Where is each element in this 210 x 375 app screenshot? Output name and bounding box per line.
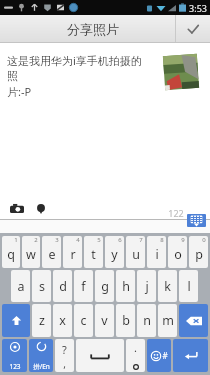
button[interactable]: Switch keyboard — [187, 214, 206, 227]
staticText: 3:53 — [189, 2, 207, 14]
staticText: e — [48, 246, 56, 263]
staticText: , — [63, 357, 66, 371]
staticText: a — [17, 278, 25, 295]
staticText: q — [7, 246, 15, 263]
staticText: 5 — [97, 236, 101, 244]
staticText: 7 — [139, 236, 143, 244]
button[interactable]: Question comma — [55, 339, 74, 372]
staticText: m — [162, 312, 174, 329]
button[interactable]: j — [137, 270, 156, 302]
staticText: 6 — [118, 236, 122, 244]
staticText: y — [111, 246, 118, 263]
button[interactable]: h — [116, 270, 135, 302]
button[interactable]: 2 — [22, 236, 40, 268]
button[interactable]: b — [116, 304, 135, 337]
staticText: 4 — [76, 236, 80, 244]
button[interactable]: a — [11, 270, 30, 302]
button[interactable]: f — [74, 270, 93, 302]
button[interactable]: Period — [126, 339, 145, 372]
button[interactable]: Language — [29, 339, 53, 372]
staticText: x — [59, 312, 66, 329]
staticText: c — [80, 312, 87, 329]
staticText: j — [145, 278, 149, 295]
staticText: t — [91, 246, 96, 263]
button[interactable]: n — [137, 304, 156, 337]
staticText: r — [70, 246, 76, 263]
staticText: z — [39, 312, 45, 329]
staticText: k — [164, 278, 171, 295]
button[interactable]: Space — [76, 339, 124, 372]
button[interactable]: Camera — [8, 200, 26, 218]
button[interactable]: 3 — [42, 236, 61, 268]
button[interactable]: 5 — [84, 236, 103, 268]
button[interactable]: x — [53, 304, 72, 337]
button[interactable]: 0 — [189, 236, 208, 268]
button[interactable]: g — [95, 270, 114, 302]
button[interactable]: Send — [176, 15, 210, 43]
button[interactable]: Numbers — [2, 339, 27, 372]
staticText: v — [101, 312, 108, 329]
button[interactable]: 7 — [126, 236, 145, 268]
button[interactable]: l — [179, 270, 198, 302]
button[interactable]: 4 — [63, 236, 82, 268]
button[interactable]: Backspace — [179, 304, 208, 337]
button[interactable]: s — [32, 270, 51, 302]
staticText: g — [101, 278, 109, 295]
staticText: 9 — [181, 236, 185, 244]
button[interactable]: c — [74, 304, 93, 337]
staticText: # — [162, 350, 168, 361]
staticText: b — [122, 312, 130, 329]
button[interactable]: Enter — [173, 339, 208, 372]
staticText: w — [26, 246, 36, 263]
staticText: 122 — [168, 207, 184, 219]
staticText: n — [143, 312, 151, 329]
staticText: 8 — [160, 236, 164, 244]
staticText: f — [81, 278, 86, 295]
staticText: u — [132, 246, 140, 263]
button[interactable]: m — [158, 304, 177, 337]
staticText: 2 — [34, 236, 38, 244]
button[interactable]: v — [95, 304, 114, 337]
button[interactable]: 1 — [2, 236, 20, 268]
staticText: 分享照片 — [67, 21, 119, 37]
staticText: 0 — [202, 236, 206, 244]
staticText: 拼/En — [33, 362, 50, 371]
staticText: 3 — [55, 236, 59, 244]
button[interactable]: Photo — [158, 49, 204, 95]
button[interactable]: Location — [32, 200, 50, 218]
staticText: . — [134, 340, 137, 355]
button[interactable]: z — [32, 304, 51, 337]
button[interactable]: 9 — [168, 236, 187, 268]
staticText: 这是我用华为i享手机拍摄的照 片:-P — [7, 53, 147, 99]
staticText: 1 — [14, 236, 18, 244]
button[interactable]: k — [158, 270, 177, 302]
button[interactable]: Shift — [2, 304, 30, 337]
button[interactable]: Emoji and symbols — [147, 339, 171, 372]
staticText: i — [155, 246, 159, 263]
staticText: o — [174, 246, 182, 263]
staticText: h — [122, 278, 130, 295]
staticText: ? — [62, 342, 67, 357]
staticText: 123 — [9, 362, 21, 371]
button[interactable]: 6 — [105, 236, 124, 268]
staticText: d — [59, 278, 67, 295]
staticText: l — [187, 278, 191, 295]
button[interactable]: d — [53, 270, 72, 302]
staticText: p — [195, 246, 203, 263]
button[interactable]: 8 — [147, 236, 166, 268]
staticText: s — [39, 278, 45, 295]
